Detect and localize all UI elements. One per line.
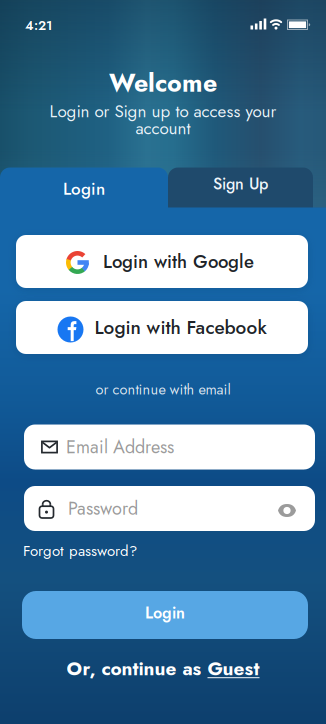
button[interactable]: Login with Facebook — [16, 301, 308, 354]
button[interactable]: Email Address — [24, 424, 315, 469]
staticText: Login with Facebook — [94, 314, 266, 341]
staticText: Password — [68, 495, 138, 521]
button[interactable]: Sign Up — [168, 167, 313, 217]
staticText: 4:21 — [25, 16, 52, 35]
staticText: or continue with email — [95, 379, 230, 400]
staticText: Login — [63, 176, 105, 201]
staticText: Forgot password? — [23, 540, 137, 562]
staticText: Login with Google — [103, 248, 254, 275]
staticText: Sign Up — [213, 172, 268, 196]
button[interactable]: Show password — [278, 502, 296, 515]
staticText: Login or Sign up to access your — [49, 99, 276, 124]
staticText: account — [135, 116, 190, 141]
button[interactable]: Password — [24, 486, 315, 531]
staticText: Or, continue as Guest — [66, 655, 259, 682]
button[interactable]: Login — [22, 591, 308, 639]
button[interactable]: Login — [0, 167, 168, 217]
button[interactable]: Login with Google — [16, 235, 308, 288]
button[interactable]: Forgot password? — [23, 540, 137, 562]
staticText: Login — [145, 601, 185, 624]
staticText: Email Address — [66, 434, 174, 460]
button[interactable]: Or, continue as Guest — [0, 655, 326, 682]
staticText: Welcome — [109, 65, 217, 101]
